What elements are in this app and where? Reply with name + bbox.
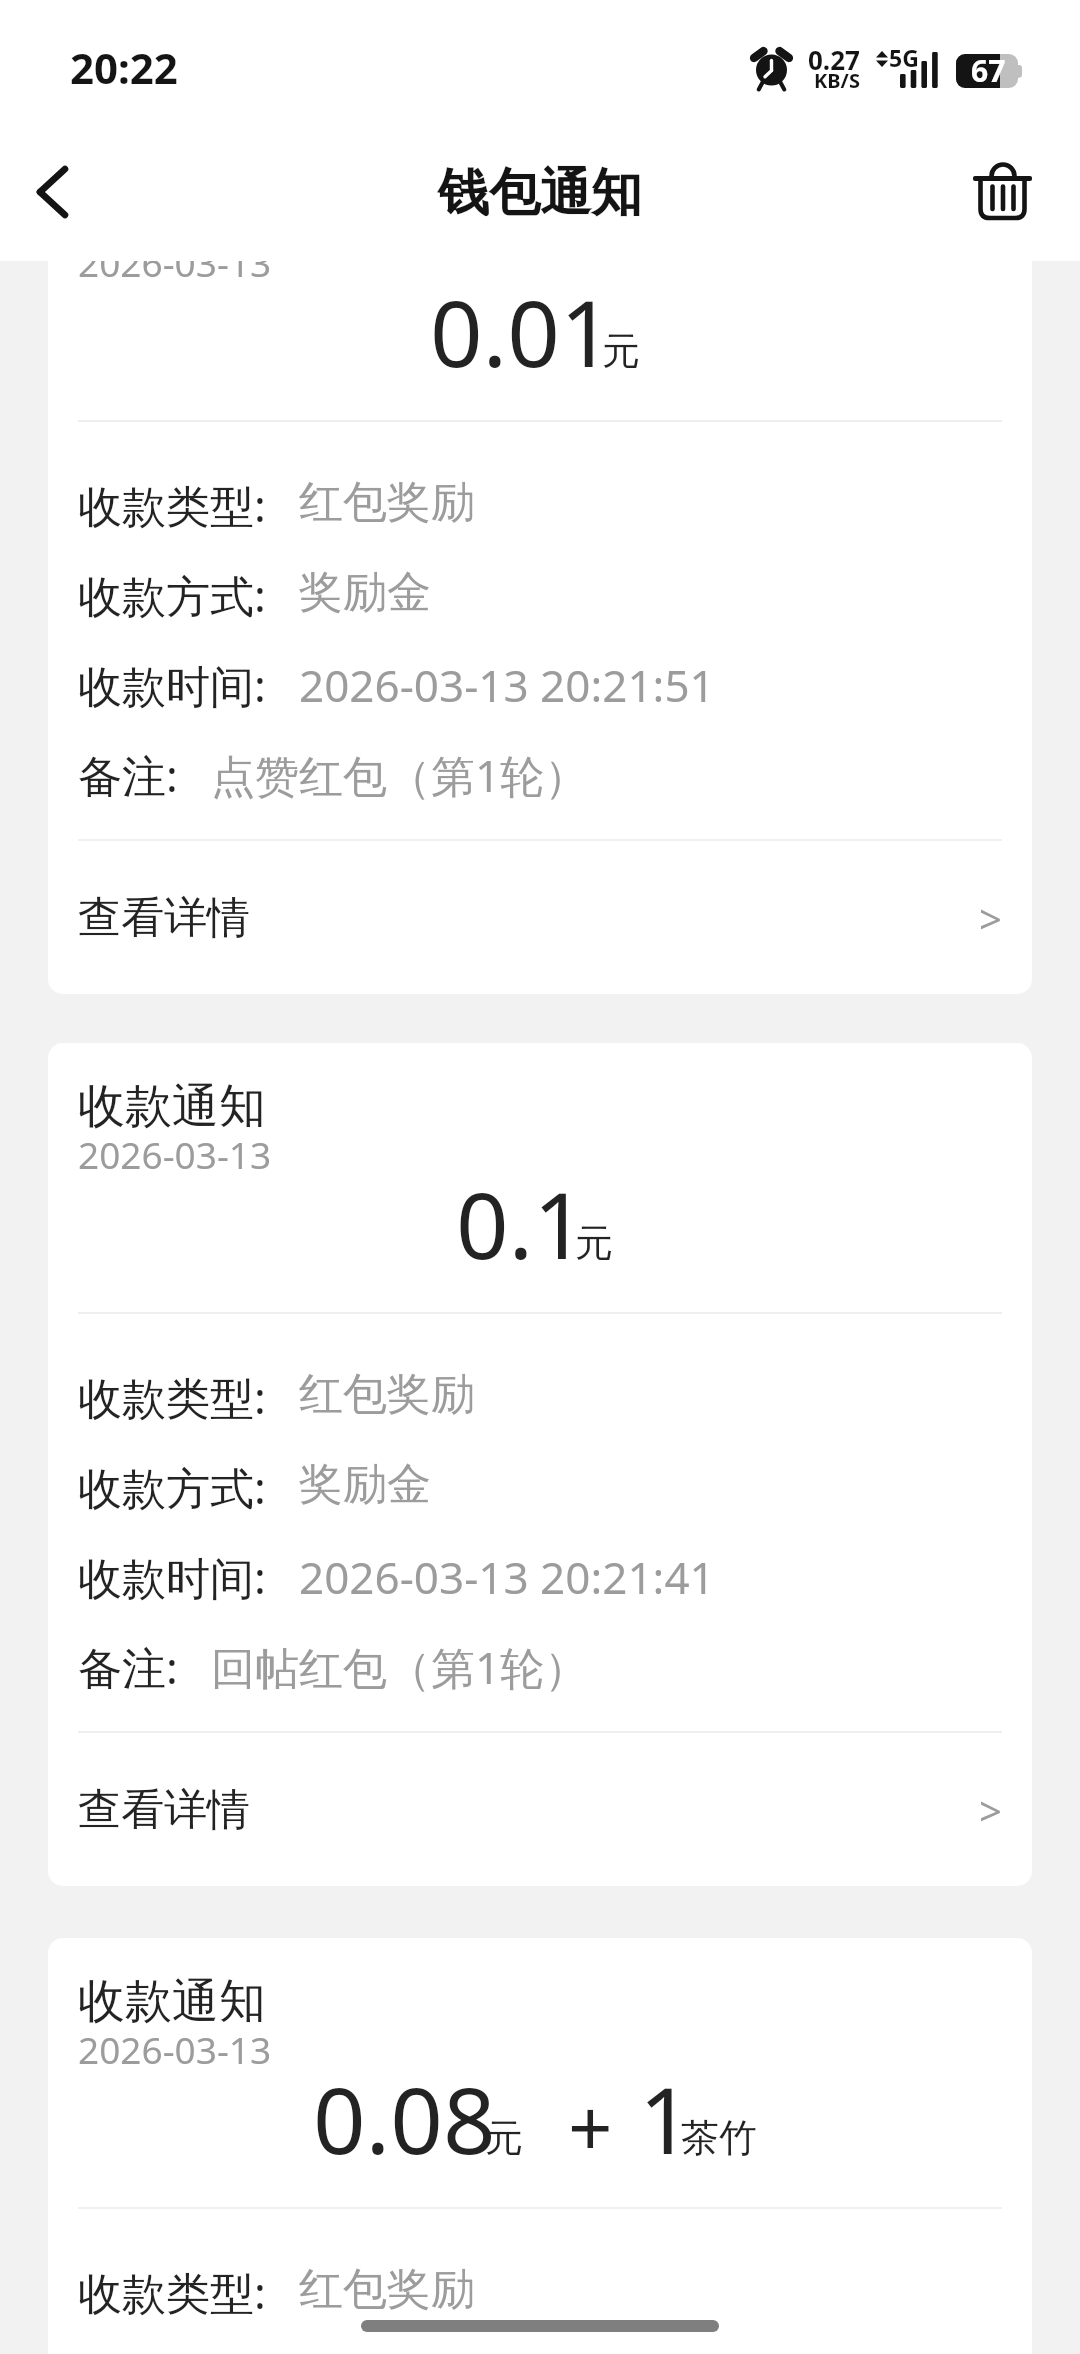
button[interactable]: 收款通知 xyxy=(48,1938,1032,2354)
staticText: 5G xyxy=(889,42,919,73)
staticText: 2026-03-13 20:21:41 xyxy=(299,1547,715,1607)
staticText: 奖励金 xyxy=(299,1457,431,1512)
staticText: 20:22 xyxy=(70,39,178,96)
staticText: 备注: xyxy=(78,1637,178,1697)
staticText: 红包奖励 xyxy=(299,2262,475,2317)
button[interactable]: 收款通知 xyxy=(48,1043,1032,1886)
staticText: 元 xyxy=(602,327,640,375)
staticText: 0.27 xyxy=(808,42,860,77)
staticText: 收款通知 xyxy=(78,1972,266,2031)
staticText: > xyxy=(979,1783,1002,1837)
button[interactable]: 查看详情 xyxy=(48,1733,1032,1886)
staticText: + xyxy=(568,2074,613,2180)
staticText: 收款类型: xyxy=(78,1367,266,1427)
staticText: 奖励金 xyxy=(299,565,431,620)
staticText: 查看详情 xyxy=(78,1783,250,1837)
staticText: 收款时间: xyxy=(78,655,266,715)
staticText: 红包奖励 xyxy=(299,475,475,530)
staticText: 点赞红包（第1轮） xyxy=(211,745,589,805)
button[interactable]: Delete all notifications xyxy=(957,148,1049,240)
staticText: 收款类型: xyxy=(78,2262,266,2322)
staticText: 67 xyxy=(971,50,1006,84)
staticText: 2026-03-13 xyxy=(78,2024,272,2074)
staticText: 元 xyxy=(575,1219,613,1267)
staticText: 2026-03-13 xyxy=(78,1129,272,1179)
staticText: > xyxy=(979,891,1002,945)
staticText: 茶竹 xyxy=(681,2114,757,2162)
staticText: 收款方式: xyxy=(78,565,266,625)
staticText: 0.1 xyxy=(456,1161,586,1286)
button[interactable]: Back xyxy=(16,156,88,228)
staticText: 1 xyxy=(639,2056,692,2181)
staticText: 查看详情 xyxy=(78,891,250,945)
staticText: 0.01 xyxy=(430,269,613,394)
staticText: 2026-03-13 20:21:51 xyxy=(299,655,715,715)
staticText: 钱包通知 xyxy=(438,161,642,225)
staticText: 0.08 xyxy=(313,2056,496,2181)
staticText: 收款方式: xyxy=(78,1457,266,1517)
staticText: 收款时间: xyxy=(78,1547,266,1607)
staticText: 收款类型: xyxy=(78,475,266,535)
staticText: 元 xyxy=(485,2114,523,2162)
staticText: 红包奖励 xyxy=(299,1367,475,1422)
staticText: 2026-03-13 xyxy=(78,237,272,287)
staticText: 回帖红包（第1轮） xyxy=(211,1637,589,1697)
staticText: 备注: xyxy=(78,745,178,805)
button[interactable]: 查看详情 xyxy=(48,841,1032,994)
staticText: KB/S xyxy=(814,67,860,94)
staticText: 收款通知 xyxy=(78,1077,266,1136)
button[interactable]: 收款通知 xyxy=(48,151,1032,994)
